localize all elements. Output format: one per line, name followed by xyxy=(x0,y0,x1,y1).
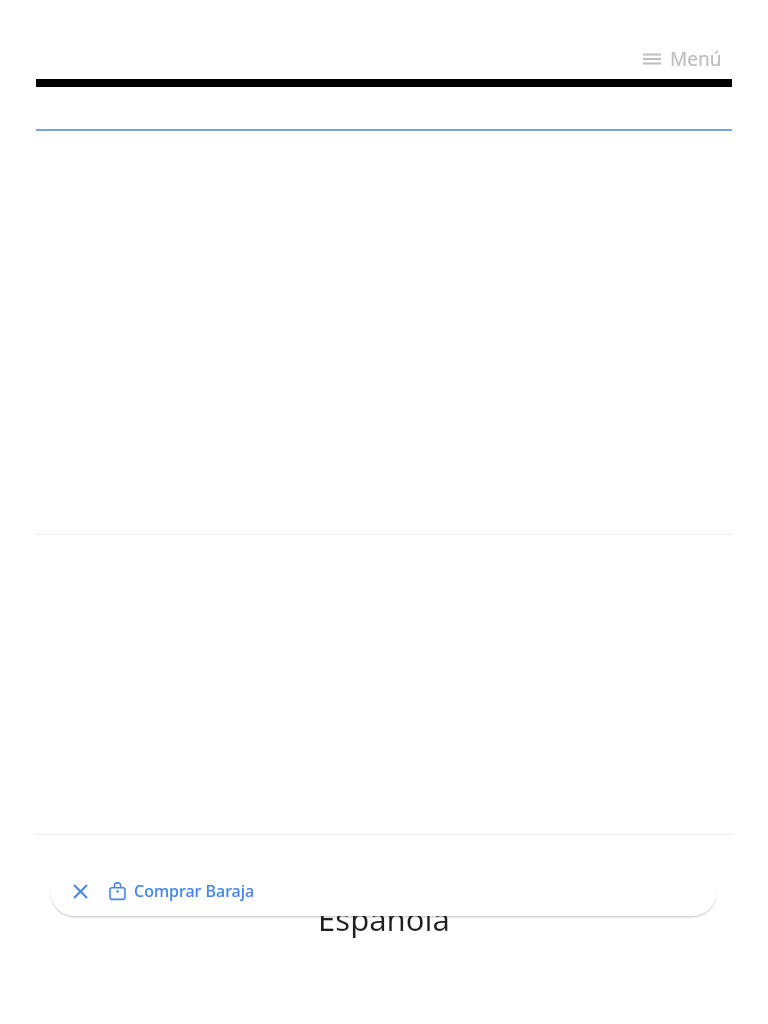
staticText: Menú xyxy=(670,46,722,72)
staticText: Española xyxy=(0,898,768,940)
button[interactable]: Cerrar xyxy=(62,873,98,909)
staticText: Comprar Baraja xyxy=(134,880,255,902)
button[interactable]: Cerrar xyxy=(50,866,717,916)
button[interactable]: Comprar Baraja xyxy=(106,876,258,906)
other: Menú xyxy=(643,52,661,66)
button[interactable]: Menú xyxy=(639,44,726,74)
